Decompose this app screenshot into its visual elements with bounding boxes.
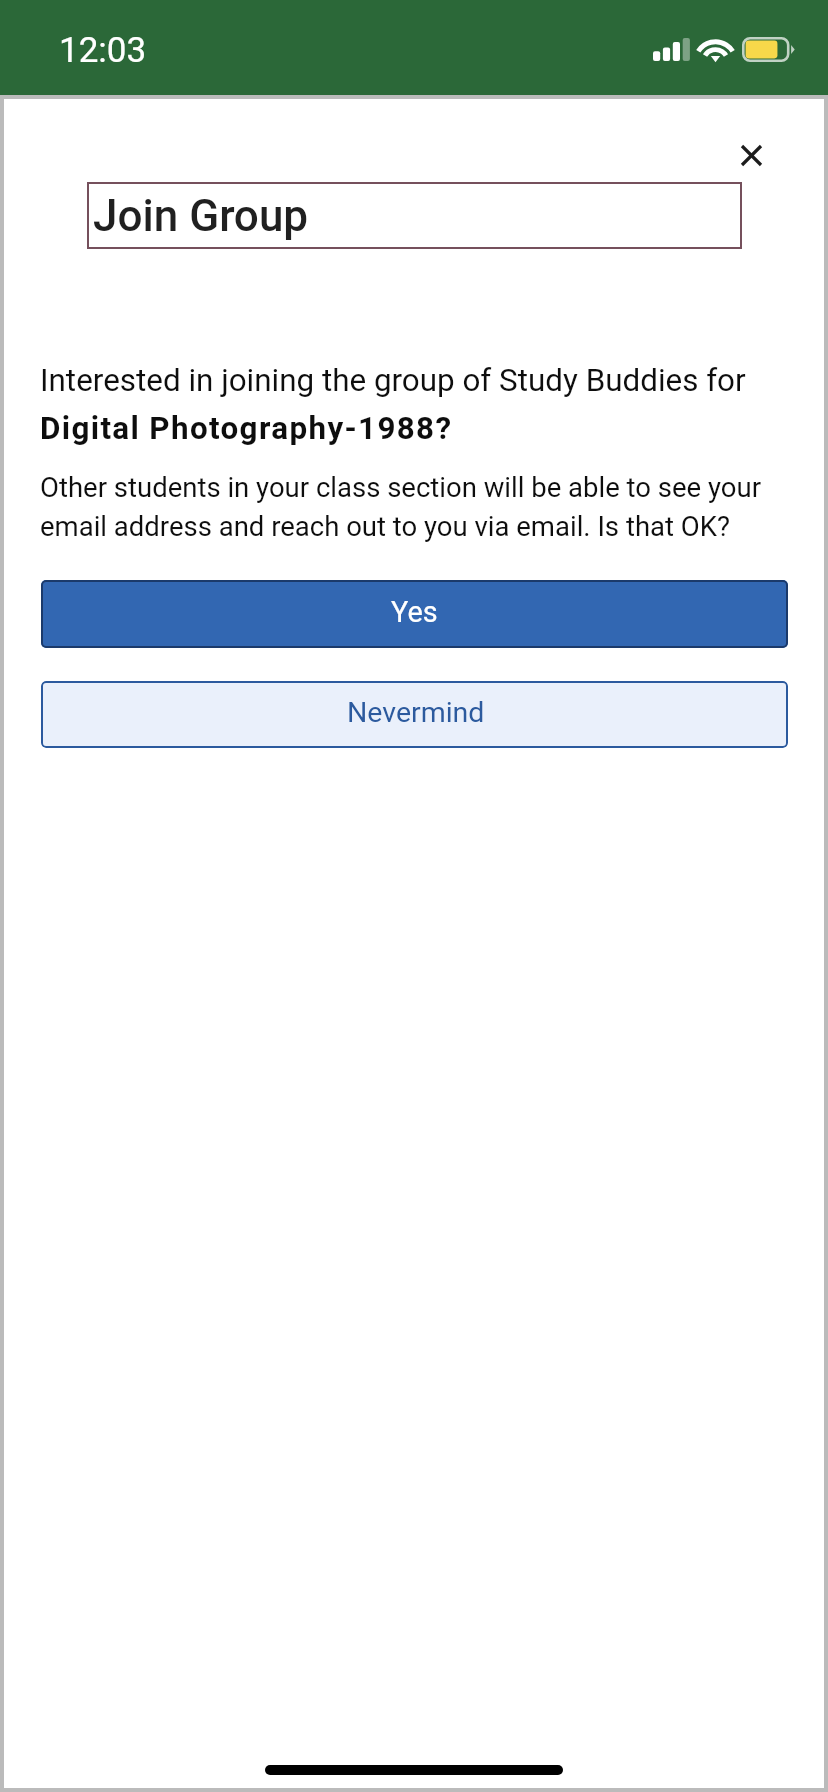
button[interactable]: Close [727,131,776,180]
staticText: Yes [391,595,438,629]
button[interactable]: Yes [41,580,788,648]
staticText: 12:03 [59,30,147,71]
staticText: Nevermind [347,696,485,729]
staticText: Other students in your class section wil… [40,466,785,544]
staticText: Join Group [93,190,309,242]
staticText: Interested in joining the group of Study… [40,353,785,449]
button[interactable]: Nevermind [41,681,788,748]
